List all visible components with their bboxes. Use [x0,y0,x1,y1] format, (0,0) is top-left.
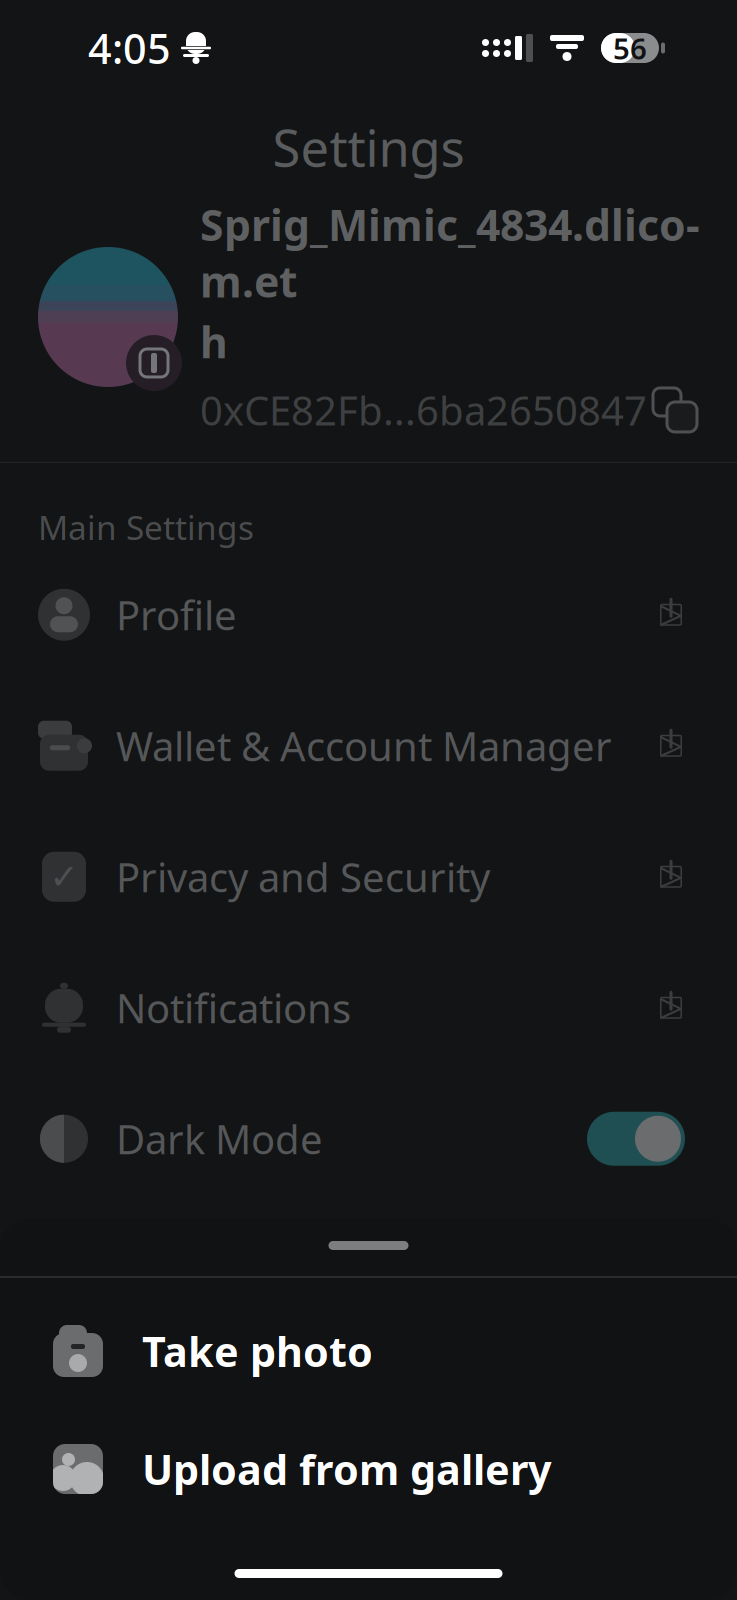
button[interactable]: Notifications [0,942,737,1073]
staticText: Privacy and Security [116,850,490,903]
staticText: > [658,978,684,1038]
button[interactable]: Copy address [647,382,703,438]
staticText: ▶ [53,1255,74,1285]
button[interactable]: Dark Mode [0,1073,737,1204]
button[interactable]: Upload from gallery [0,1410,737,1528]
staticText: Settings [272,113,464,181]
staticText: Wallet & Account Manager [116,719,612,772]
staticText: Dark Mode [116,1112,323,1165]
staticText: 4:05 [88,21,171,75]
staticText: > [658,585,684,645]
staticText: Main Settings [38,505,254,549]
staticText: ✓ [49,857,78,896]
button[interactable]: Take photo [0,1292,737,1410]
staticText: 0xCE82Fb...6ba2650847 [200,383,647,436]
staticText: h [200,313,228,370]
staticText: > [658,847,684,907]
staticText: Sprig_Mimic_4834.dlicom.et [200,196,700,309]
staticText: > [658,716,684,776]
staticText: Notifications [116,981,351,1034]
staticText: Autoplay Video [116,1243,398,1296]
staticText: Profile [116,588,237,641]
button[interactable]: ▶ [0,1204,737,1335]
button[interactable]: ✓ [0,811,737,942]
staticText: Upload from gallery [142,1442,552,1496]
staticText: 56 [613,28,647,67]
button[interactable]: Wallet & Account Manager [0,680,737,811]
button[interactable]: Profile [0,549,737,680]
staticText: Take photo [142,1324,373,1378]
